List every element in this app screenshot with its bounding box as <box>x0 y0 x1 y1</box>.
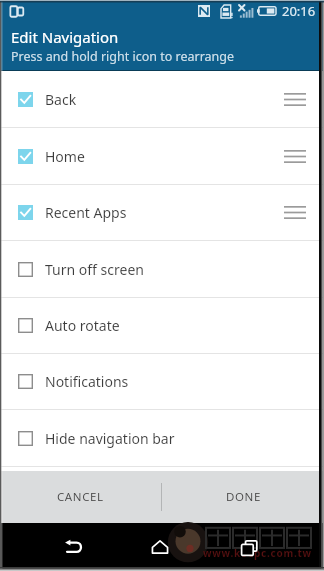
button[interactable]: Back <box>45 523 101 571</box>
button[interactable]: CANCEL <box>0 471 161 523</box>
staticText: Turn off screen <box>45 260 144 279</box>
button[interactable]: Reorder <box>273 185 317 240</box>
staticText: www.kocpc.com.tw <box>203 546 312 560</box>
button[interactable]: Reorder <box>273 71 317 127</box>
button[interactable]: Turn off screen <box>0 241 324 297</box>
staticText: Back <box>45 90 77 109</box>
button[interactable]: Recent apps <box>222 523 278 571</box>
button[interactable]: DONE <box>162 471 324 523</box>
button[interactable]: Back <box>0 71 324 127</box>
staticText: Press and hold right icon to rearrange <box>11 48 235 65</box>
button[interactable]: Home <box>132 523 188 571</box>
button[interactable]: Recent Apps <box>0 185 324 240</box>
staticText: Hide navigation bar <box>45 429 175 448</box>
staticText: Edit Navigation <box>11 27 119 47</box>
button[interactable]: Home <box>0 128 324 184</box>
button[interactable]: Reorder <box>273 128 317 184</box>
staticText: DONE <box>226 489 261 505</box>
staticText: Recent Apps <box>45 203 127 222</box>
staticText: Notifications <box>45 372 129 391</box>
staticText: 20:16 <box>282 2 316 20</box>
staticText: CANCEL <box>57 489 104 505</box>
staticText: Home <box>45 147 85 166</box>
button[interactable]: Hide navigation bar <box>0 410 324 466</box>
button[interactable]: Notifications <box>0 354 324 409</box>
staticText: Auto rotate <box>45 316 120 335</box>
button[interactable]: Auto rotate <box>0 298 324 353</box>
